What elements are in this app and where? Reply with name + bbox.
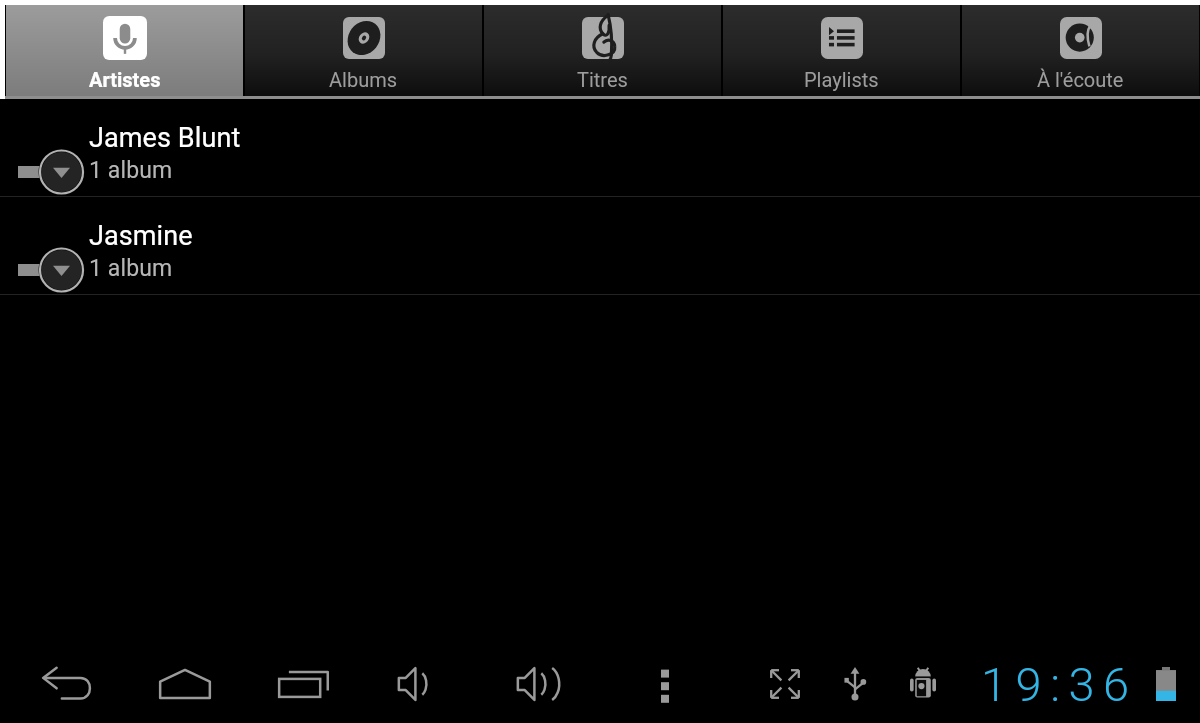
button[interactable]: Volume up [512,645,566,723]
button[interactable]: Back [39,645,93,723]
button[interactable]: Titres [484,5,721,96]
staticText: James Blunt [89,122,241,154]
button[interactable]: Volume down [393,645,447,723]
staticText: Titres [577,68,628,91]
staticText: 1 album [89,255,173,282]
button[interactable]: James Blunt [0,99,1200,197]
button[interactable]: Playlists [723,5,960,96]
button[interactable]: Recent apps [277,645,331,723]
staticText: Albums [329,68,398,91]
button[interactable]: USB connected [828,645,882,723]
button[interactable]: Home [158,645,212,723]
staticText: 19:36 [981,657,1138,712]
staticText: À l'écoute [1037,68,1124,91]
button[interactable]: USB debugging [896,645,950,723]
staticText: Playlists [804,68,879,91]
button[interactable]: Albums [245,5,482,96]
button[interactable]: More options [638,645,692,723]
button[interactable]: Jasmine [0,197,1200,295]
button[interactable]: À l'écoute [962,5,1199,96]
button[interactable]: Fullscreen [758,645,812,723]
staticText: 1 album [89,157,173,184]
button[interactable]: Artistes [6,5,243,96]
staticText: Artistes [89,68,161,91]
staticText: Jasmine [89,220,193,252]
